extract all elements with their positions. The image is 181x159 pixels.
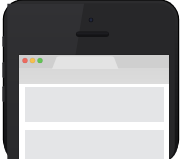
button[interactable]: Phone mockup with browser window [0,0,181,159]
